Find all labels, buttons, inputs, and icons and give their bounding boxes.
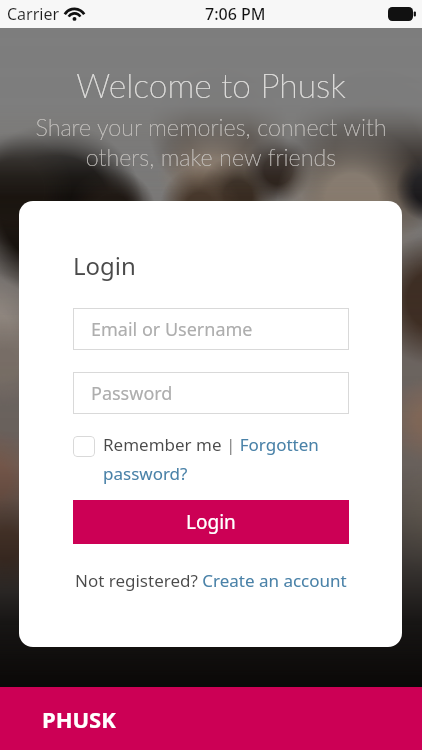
- staticText: Login: [73, 249, 136, 282]
- staticText: Remember me | Forgotten password?: [103, 433, 349, 485]
- staticText: Share your memories, connect with others…: [35, 113, 387, 171]
- staticText: Email or Username: [91, 317, 253, 342]
- button[interactable]: PHUSK: [0, 687, 422, 750]
- staticText: Carrier: [7, 3, 60, 25]
- button[interactable]: Login: [73, 500, 349, 544]
- staticText: Welcome to Phusk: [76, 65, 346, 105]
- button[interactable]: Password: [73, 372, 349, 414]
- staticText: Login: [186, 509, 236, 535]
- staticText: 7:06 PM: [205, 3, 266, 25]
- button[interactable]: Email or Username: [73, 308, 349, 350]
- staticText: Not registered? Create an account: [75, 569, 347, 592]
- staticText: PHUSK: [42, 704, 116, 734]
- button[interactable]: Remember me: [73, 436, 95, 457]
- staticText: Password: [91, 381, 173, 406]
